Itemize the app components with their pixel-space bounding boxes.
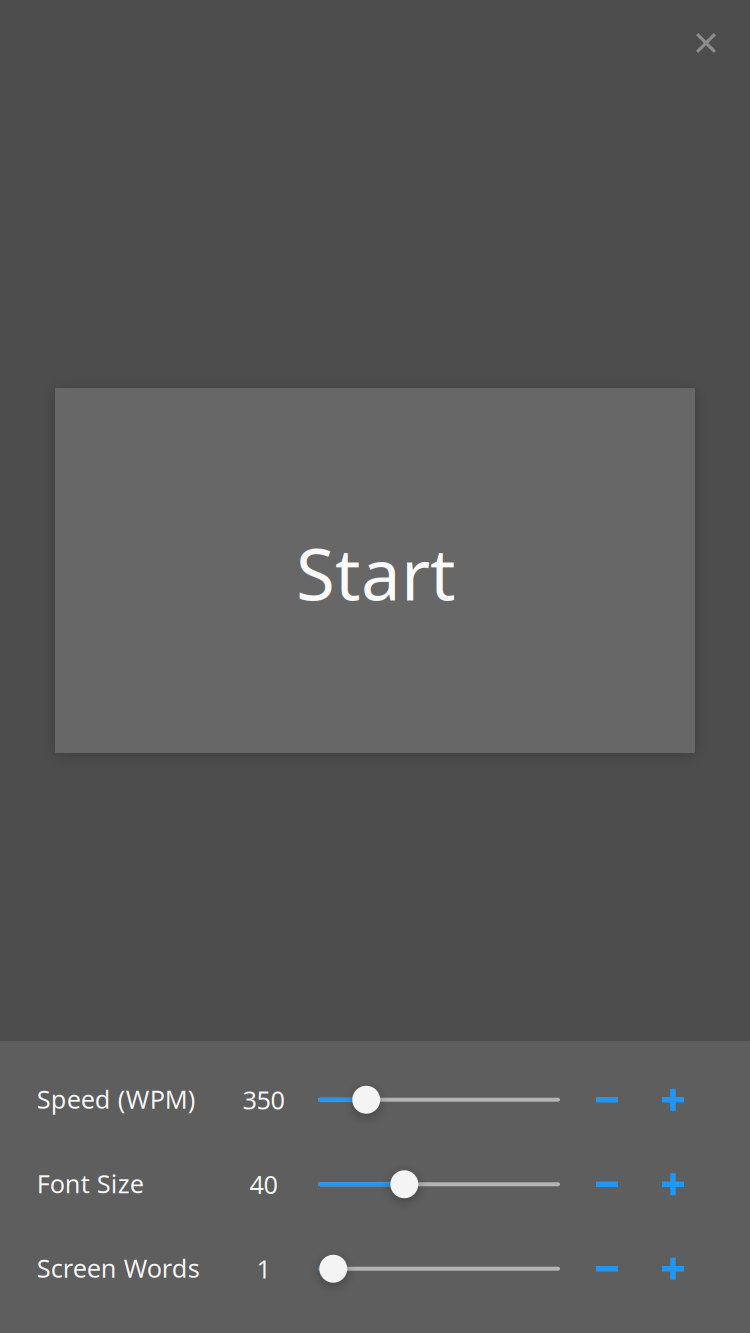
staticText: 40 bbox=[249, 1167, 277, 1201]
button[interactable]: Screen Words slider bbox=[318, 1226, 560, 1311]
button[interactable]: Increase Speed (WPM) bbox=[640, 1057, 706, 1142]
button[interactable]: Close bbox=[678, 15, 734, 71]
button[interactable]: Start bbox=[55, 388, 695, 753]
staticText: Start bbox=[296, 526, 456, 620]
button[interactable]: Font Size slider bbox=[318, 1142, 560, 1226]
staticText: Font Size bbox=[37, 1167, 144, 1200]
button[interactable]: Speed (WPM) slider bbox=[318, 1057, 560, 1142]
button[interactable]: Increase Font Size bbox=[640, 1142, 706, 1226]
staticText: 350 bbox=[242, 1083, 284, 1116]
button[interactable]: Decrease Font Size bbox=[574, 1142, 640, 1226]
button[interactable]: Decrease Screen Words bbox=[574, 1226, 640, 1311]
staticText: Screen Words bbox=[37, 1251, 200, 1285]
staticText: Speed (WPM) bbox=[37, 1082, 196, 1116]
staticText: 1 bbox=[256, 1252, 270, 1285]
button[interactable]: Decrease Speed (WPM) bbox=[574, 1057, 640, 1142]
button[interactable]: Increase Screen Words bbox=[640, 1226, 706, 1311]
